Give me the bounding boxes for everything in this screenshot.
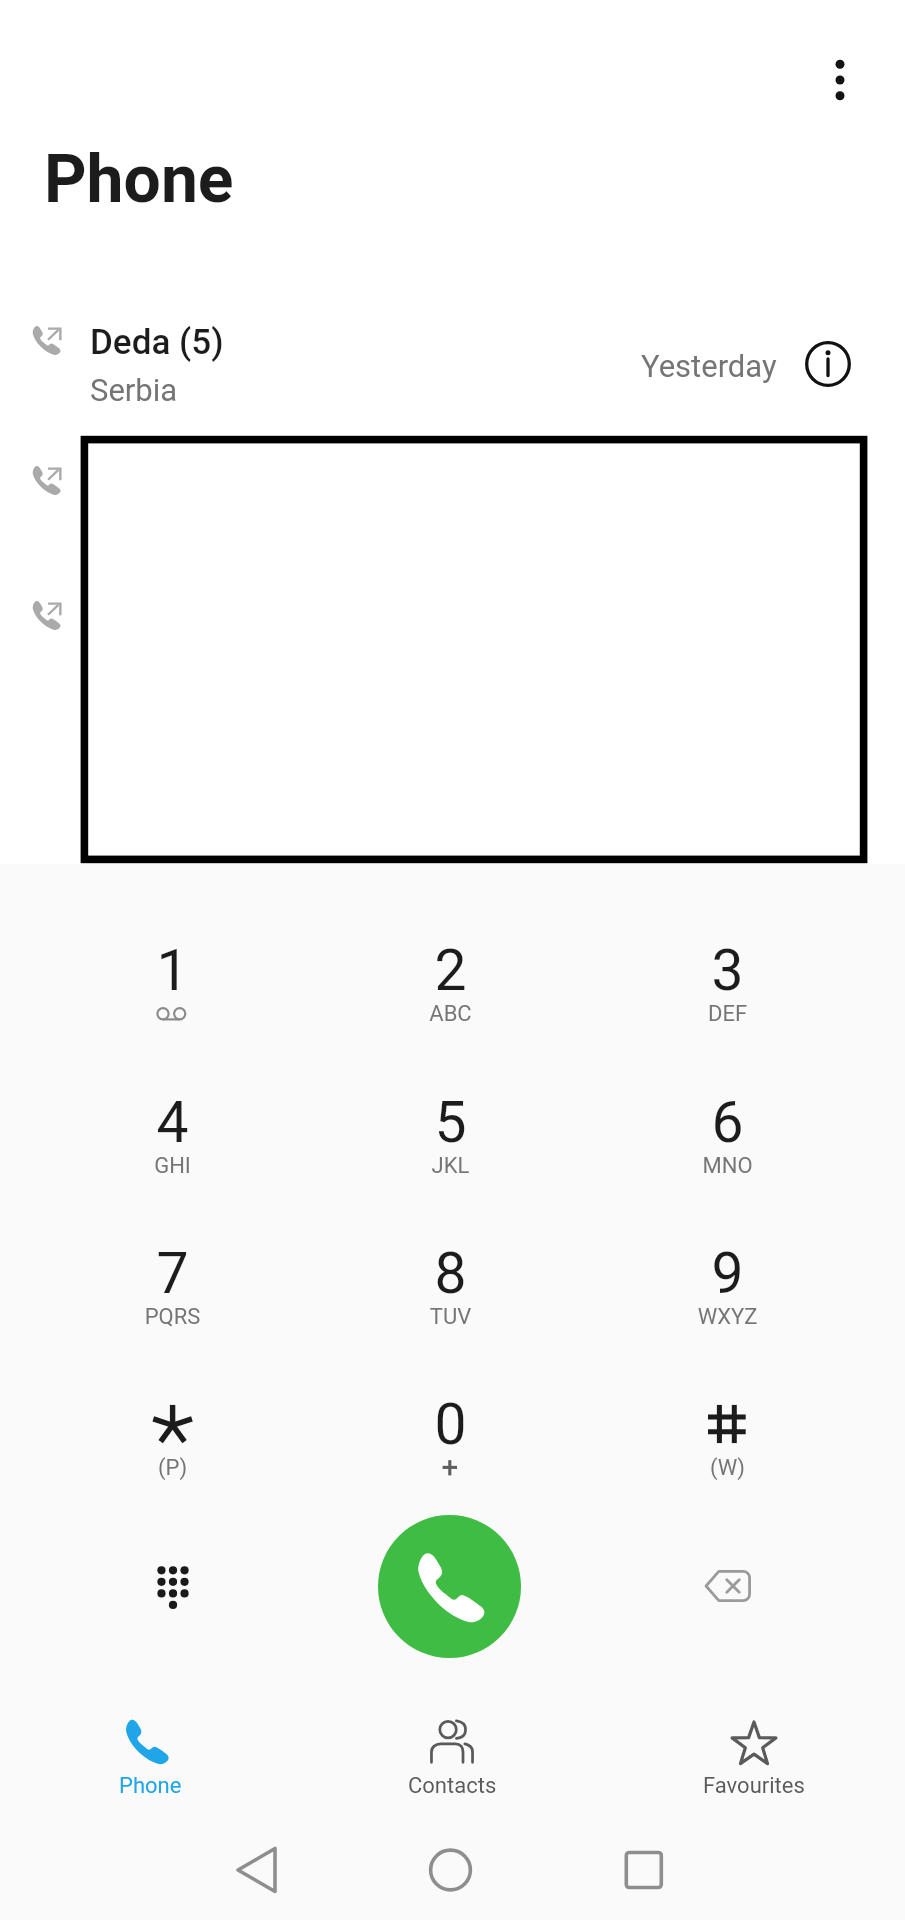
button[interactable]: Recent apps: [593, 1820, 693, 1920]
button[interactable]: 4: [34, 1068, 311, 1219]
staticText: 4: [34, 1089, 311, 1156]
button[interactable]: (W): [589, 1370, 866, 1521]
button[interactable]: 3: [589, 916, 866, 1067]
staticText: 9: [589, 1240, 866, 1307]
staticText: (W): [589, 1455, 866, 1481]
button[interactable]: 5: [312, 1068, 589, 1219]
button[interactable]: 7: [34, 1219, 311, 1370]
button[interactable]: 8: [312, 1219, 589, 1370]
staticText: (P): [34, 1455, 311, 1481]
staticText: 3: [589, 937, 866, 1004]
button[interactable]: Backspace: [667, 1526, 787, 1646]
button[interactable]: Deda (5): [0, 300, 905, 418]
staticText: 6: [589, 1089, 866, 1156]
staticText: Favourites: [703, 1773, 805, 1799]
staticText: 5: [312, 1089, 589, 1156]
staticText: Phone: [44, 141, 234, 218]
staticText: GHI: [34, 1153, 311, 1179]
button[interactable]: Back: [206, 1820, 306, 1920]
button[interactable]: 9: [589, 1219, 866, 1370]
staticText: 2: [312, 937, 589, 1004]
staticText: WXYZ: [589, 1304, 866, 1330]
staticText: TUV: [312, 1304, 589, 1330]
staticText: PQRS: [34, 1304, 311, 1330]
button[interactable]: Call details: [794, 330, 862, 398]
staticText: 8: [312, 1240, 589, 1307]
staticText: JKL: [312, 1153, 589, 1179]
button[interactable]: (P): [34, 1370, 311, 1521]
staticText: MNO: [589, 1153, 866, 1179]
staticText: Phone: [119, 1773, 182, 1799]
staticText: ABC: [312, 1001, 589, 1027]
staticText: Serbia: [90, 372, 178, 408]
staticText: Contacts: [408, 1773, 497, 1799]
staticText: 7: [34, 1240, 311, 1307]
button[interactable]: 2: [312, 916, 589, 1067]
staticText: Deda (5): [90, 322, 224, 363]
button[interactable]: 6: [589, 1068, 866, 1219]
button[interactable]: Favourites: [603, 1696, 905, 1816]
button[interactable]: Home: [400, 1820, 500, 1920]
button[interactable]: 1: [34, 916, 311, 1067]
staticText: 0: [312, 1391, 589, 1458]
button[interactable]: Keypad: [113, 1523, 233, 1643]
staticText: 1: [34, 937, 311, 1004]
staticText: Yesterday: [641, 348, 777, 384]
button[interactable]: Contacts: [301, 1696, 603, 1816]
button[interactable]: Phone: [0, 1696, 301, 1816]
button[interactable]: More options: [804, 44, 876, 116]
staticText: DEF: [589, 1001, 866, 1027]
button[interactable]: Call: [378, 1515, 521, 1658]
button[interactable]: 0: [312, 1370, 589, 1521]
